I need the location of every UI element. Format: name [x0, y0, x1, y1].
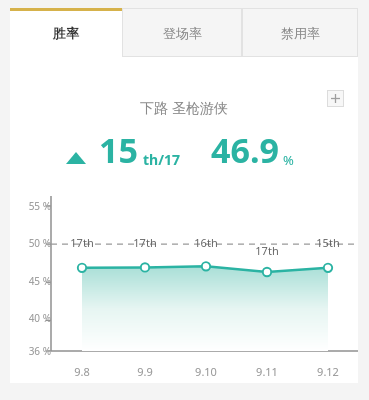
staticText: 40 %: [14, 311, 51, 325]
staticText: 45 %: [14, 274, 51, 288]
staticText: %: [283, 151, 294, 169]
staticText: 55 %: [14, 199, 51, 213]
staticText: 17th: [64, 235, 100, 250]
staticText: 46.9: [211, 127, 279, 173]
staticText: 禁用率: [281, 25, 320, 41]
staticText: 17th: [127, 235, 163, 250]
staticText: 16th: [188, 235, 224, 250]
staticText: 17th: [249, 243, 285, 258]
staticText: 9.11: [249, 364, 285, 379]
staticText: 9.12: [310, 364, 346, 379]
button[interactable]: Add: [327, 90, 344, 107]
staticText: 50 %: [14, 236, 51, 250]
staticText: 15: [99, 127, 138, 173]
staticText: 9.8: [64, 364, 100, 379]
staticText: 9.10: [188, 364, 224, 379]
staticText: 下路 圣枪游侠: [140, 98, 228, 117]
staticText: 36 %: [14, 344, 51, 358]
staticText: 登场率: [163, 25, 202, 41]
staticText: 15th: [310, 235, 346, 250]
staticText: 9.9: [127, 364, 163, 379]
button[interactable]: 胜率: [10, 8, 122, 57]
staticText: 胜率: [53, 25, 79, 41]
button[interactable]: 登场率: [122, 8, 242, 57]
staticText: th/17: [143, 150, 181, 169]
button[interactable]: 禁用率: [242, 8, 358, 57]
